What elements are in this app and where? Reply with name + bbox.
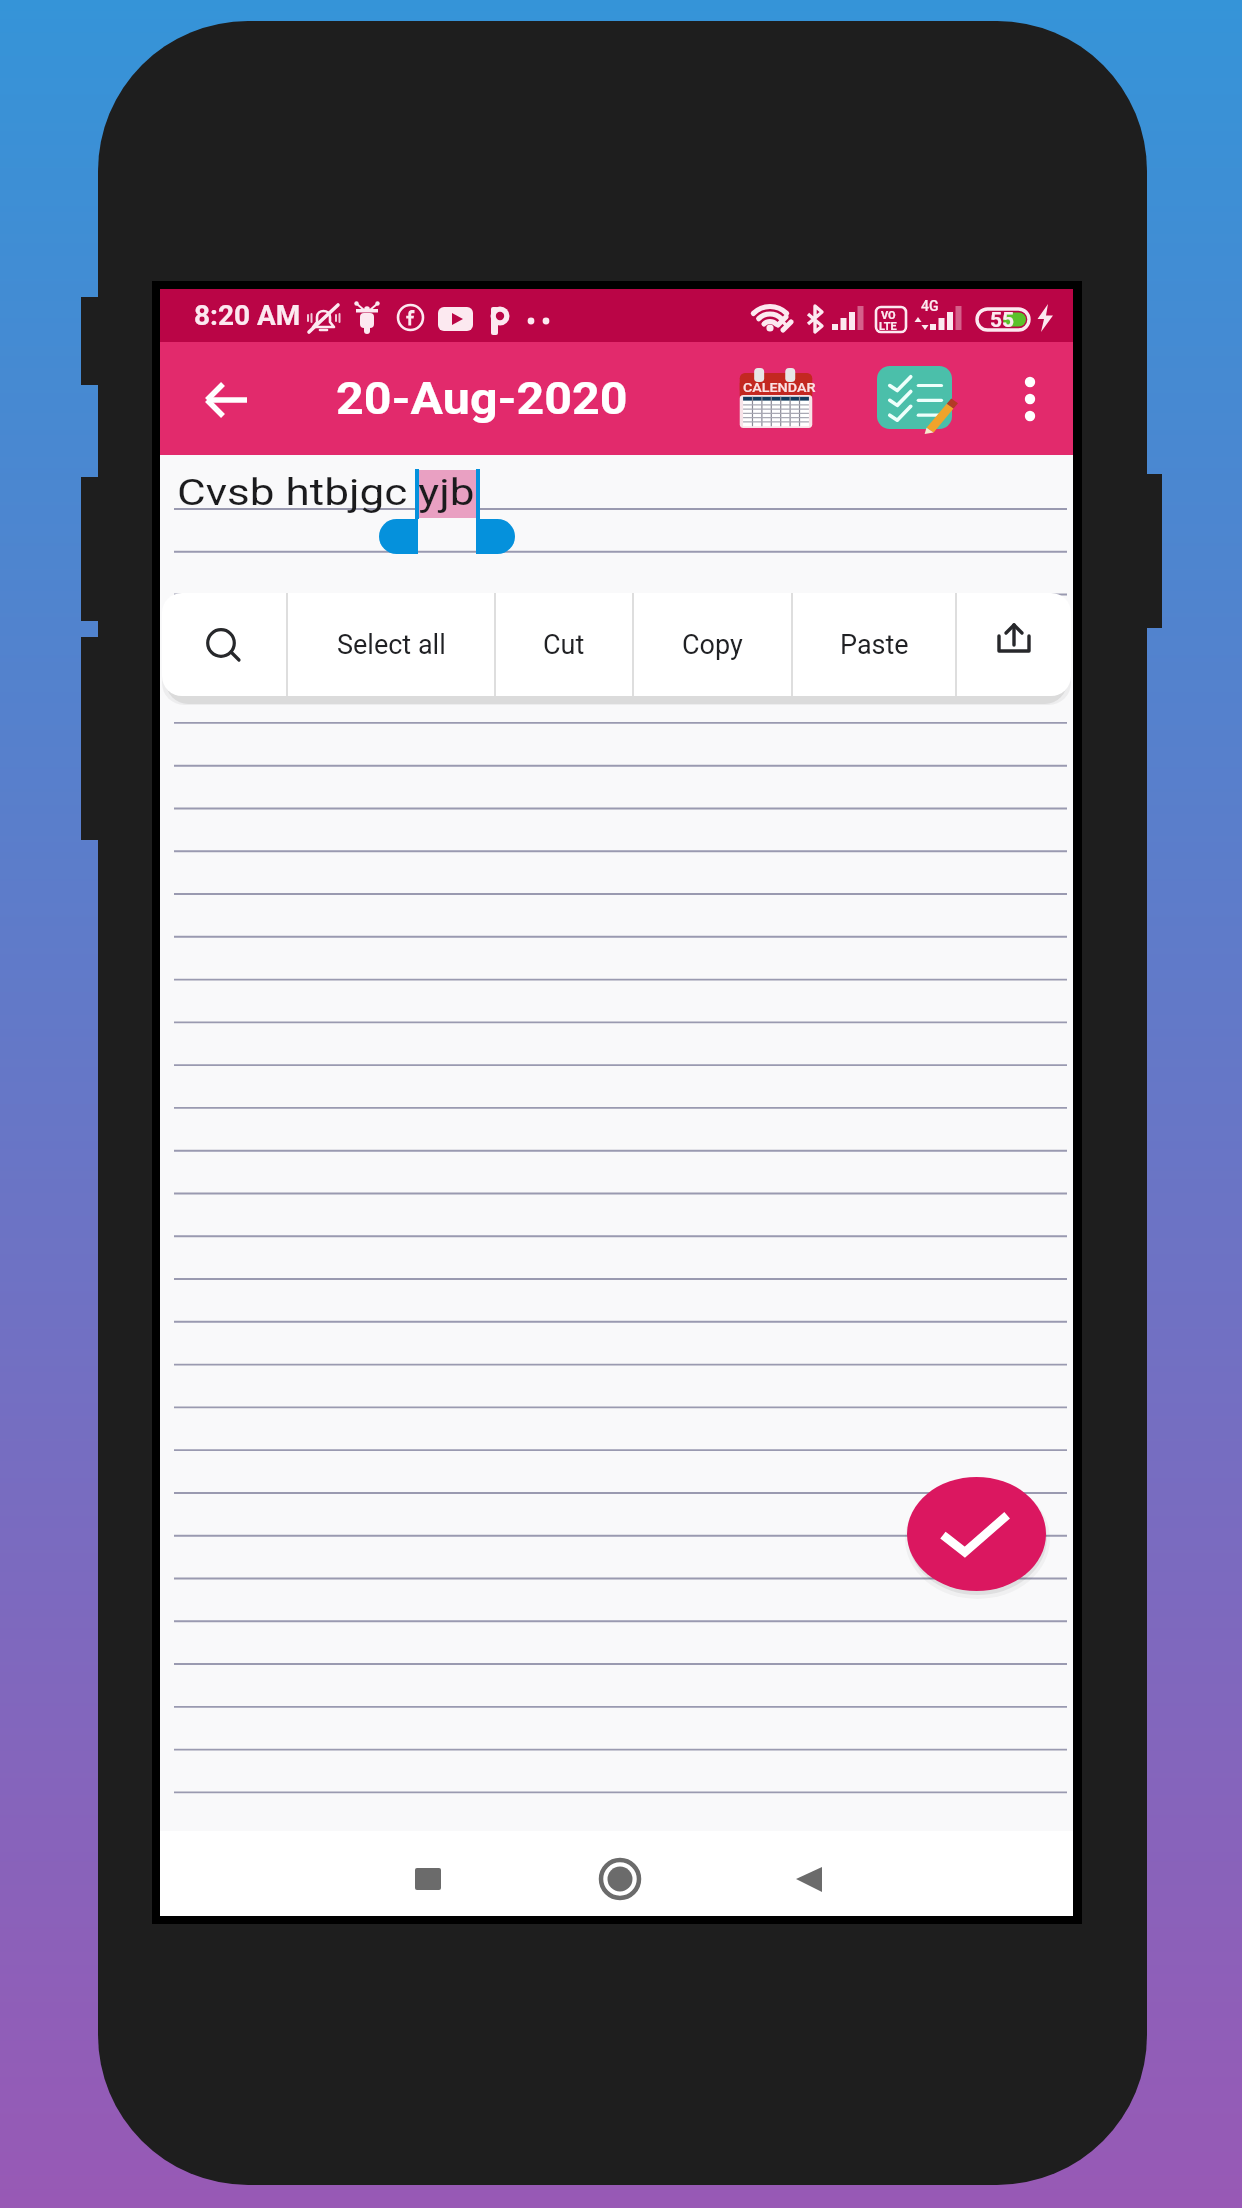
button[interactable]: Home [590, 1849, 650, 1909]
button[interactable]: Navigate up [183, 356, 271, 444]
staticText: Cvsb htbjgc yjb [177, 472, 475, 514]
staticText: Copy [682, 629, 743, 661]
staticText: Select all [337, 629, 446, 661]
button[interactable]: Calendar [739, 368, 813, 428]
button[interactable]: Save note [899, 1469, 1054, 1599]
staticText: 8:20 AM [194, 299, 301, 332]
staticText: VO [881, 309, 896, 322]
staticText: Cut [543, 629, 585, 661]
button[interactable]: Copy [634, 593, 791, 696]
button[interactable]: Select all [288, 593, 494, 696]
staticText: Paste [840, 629, 909, 661]
button[interactable]: Share [957, 593, 1071, 696]
button[interactable]: More options [990, 359, 1070, 439]
staticText: LTE [879, 320, 897, 333]
staticText: 20-Aug-2020 [336, 372, 628, 425]
staticText: 4G [921, 298, 939, 314]
button[interactable]: Paste [793, 593, 955, 696]
button[interactable]: Checklist [877, 366, 952, 429]
button[interactable]: Back [780, 1849, 840, 1909]
button[interactable]: Cut [496, 593, 632, 696]
staticText: CALENDAR [743, 380, 816, 395]
button[interactable]: Search [162, 593, 286, 696]
staticText: 55 [990, 308, 1015, 333]
button[interactable]: Recent apps [398, 1849, 458, 1909]
